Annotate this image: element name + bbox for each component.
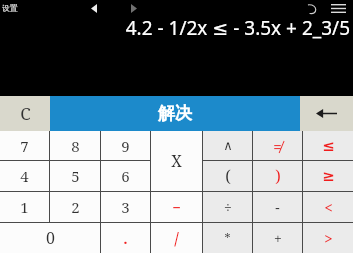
staticText: 0 xyxy=(46,227,55,249)
staticText: ≥ xyxy=(322,167,335,185)
button[interactable]: 9 xyxy=(101,131,150,160)
button[interactable]: ≠ xyxy=(253,131,302,160)
button[interactable]: ∧ xyxy=(203,131,252,160)
staticText: 解决 xyxy=(158,103,192,124)
button[interactable]: 3 xyxy=(101,192,150,222)
staticText: . xyxy=(123,228,128,248)
button[interactable]: + xyxy=(253,223,302,253)
button[interactable]: 7 xyxy=(0,131,49,160)
staticText: > xyxy=(324,228,333,248)
button[interactable]: 4 xyxy=(0,161,49,191)
button[interactable]: > xyxy=(303,223,353,253)
button[interactable]: Menu xyxy=(327,1,349,16)
staticText: − xyxy=(172,197,181,217)
staticText: ≠ xyxy=(273,136,282,156)
button[interactable]: − xyxy=(151,192,202,222)
button[interactable]: 设置 xyxy=(2,1,30,14)
staticText: 6 xyxy=(121,166,130,186)
button[interactable]: 2 xyxy=(50,192,100,222)
button[interactable]: 8 xyxy=(50,131,100,160)
button[interactable]: ) xyxy=(253,161,302,191)
staticText: - xyxy=(275,198,280,217)
staticText: ≤ xyxy=(322,137,335,155)
staticText: ) xyxy=(275,165,281,187)
staticText: 9 xyxy=(121,136,130,156)
staticText: 4 xyxy=(20,166,29,186)
staticText: * xyxy=(224,230,231,246)
staticText: 设置 xyxy=(2,3,18,13)
button[interactable]: / xyxy=(151,223,202,253)
staticText: ∧ xyxy=(223,138,233,153)
button[interactable]: ≥ xyxy=(303,161,353,191)
staticText: 5 xyxy=(71,166,80,186)
button[interactable]: ≤ xyxy=(303,131,353,160)
button[interactable]: X xyxy=(151,131,202,191)
staticText: 7 xyxy=(20,136,29,156)
button[interactable]: C xyxy=(0,96,50,131)
staticText: 1 xyxy=(20,197,29,217)
staticText: + xyxy=(274,229,282,248)
button[interactable]: ÷ xyxy=(203,192,252,222)
button[interactable]: 解决 xyxy=(50,96,300,131)
button[interactable]: Backspace xyxy=(300,96,353,131)
staticText: X xyxy=(171,150,182,172)
button[interactable]: * xyxy=(203,223,252,253)
button[interactable]: 0 xyxy=(0,223,100,253)
staticText: / xyxy=(174,227,179,249)
staticText: < xyxy=(324,197,333,217)
staticText: ÷ xyxy=(224,198,232,217)
staticText: C xyxy=(20,102,31,125)
staticText: 2 xyxy=(71,197,80,217)
button[interactable]: . xyxy=(101,223,150,253)
button[interactable]: Undo xyxy=(304,1,320,16)
button[interactable]: Next xyxy=(125,1,143,15)
button[interactable]: ( xyxy=(203,161,252,191)
button[interactable]: Previous xyxy=(85,1,103,15)
staticText: 3 xyxy=(121,197,130,217)
button[interactable]: 1 xyxy=(0,192,49,222)
button[interactable]: 6 xyxy=(101,161,150,191)
button[interactable]: 5 xyxy=(50,161,100,191)
button[interactable]: - xyxy=(253,192,302,222)
staticText: 4.2 - 1/2x ≤ - 3.5x + 2_3/5 xyxy=(125,15,350,41)
staticText: 8 xyxy=(71,136,80,156)
staticText: ( xyxy=(225,165,231,187)
button[interactable]: < xyxy=(303,192,353,222)
